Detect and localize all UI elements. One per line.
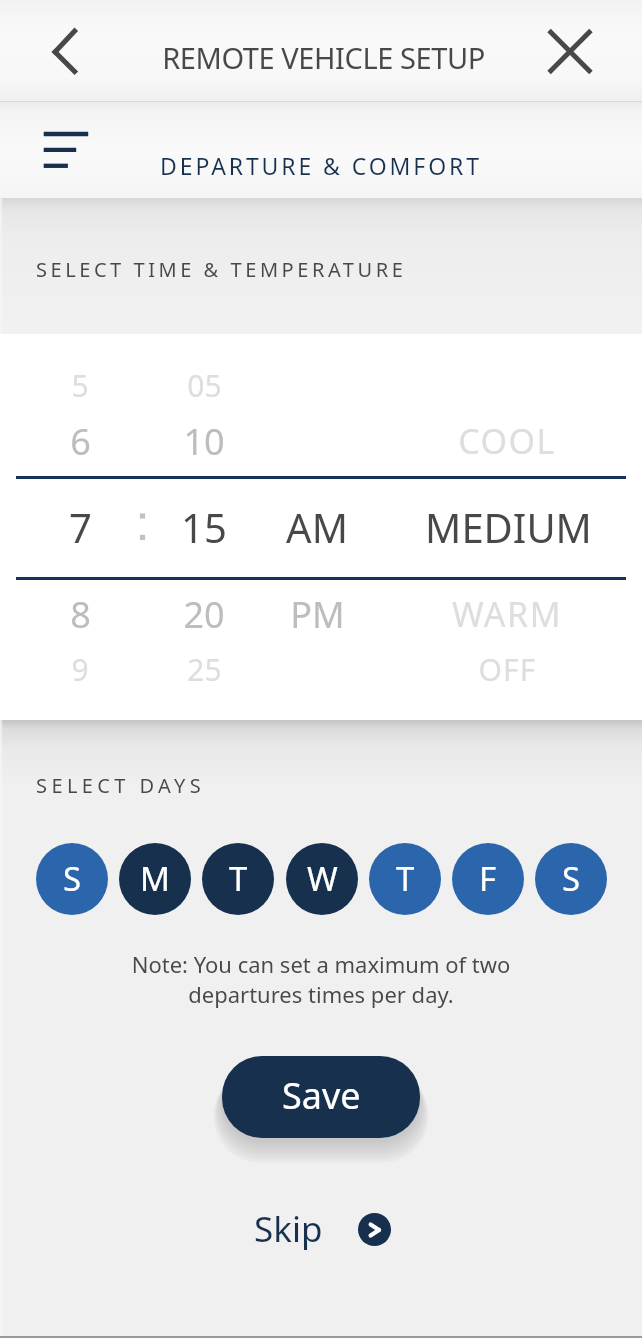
staticText: SELECT TIME & TEMPERATURE — [36, 256, 407, 283]
button[interactable]: T — [369, 843, 441, 915]
staticText: 25 — [187, 649, 222, 690]
staticText: Skip — [254, 1205, 323, 1253]
button[interactable]: F — [452, 843, 524, 915]
staticText: AM — [286, 500, 348, 554]
staticText: T — [396, 856, 415, 901]
staticText: 8 — [70, 590, 91, 639]
staticText: REMOTE VEHICLE SETUP — [162, 38, 485, 77]
staticText: SELECT DAYS — [36, 772, 206, 799]
staticText: 9 — [71, 649, 89, 690]
staticText: 6 — [70, 417, 91, 466]
staticText: COOL — [458, 418, 556, 464]
button[interactable]: W — [286, 843, 358, 915]
staticText: 20 — [183, 590, 225, 639]
staticText: 7 — [69, 500, 92, 554]
staticText: 10 — [183, 417, 225, 466]
staticText: 05 — [187, 365, 222, 406]
button[interactable]: Skip — [238, 1196, 410, 1262]
staticText: T — [229, 856, 248, 901]
button[interactable]: M — [119, 843, 191, 915]
staticText: WARM — [452, 591, 562, 637]
button[interactable]: Menu — [34, 122, 98, 178]
button[interactable]: Close — [539, 20, 601, 82]
staticText: F — [479, 856, 497, 901]
staticText: Save — [282, 1071, 361, 1120]
button[interactable]: Back — [30, 12, 100, 92]
staticText: S — [562, 856, 581, 901]
staticText: 15 — [181, 500, 227, 554]
staticText: S — [63, 856, 82, 901]
staticText: DEPARTURE & COMFORT — [160, 150, 482, 181]
staticText: M — [140, 856, 170, 901]
staticText: OFF — [478, 649, 537, 690]
staticText: W — [307, 856, 338, 901]
staticText: MEDIUM — [425, 500, 592, 554]
staticText: 5 — [71, 365, 89, 406]
button[interactable]: S — [36, 843, 108, 915]
staticText: Note: You can set a maximum of two depar… — [0, 949, 642, 1010]
button[interactable]: Save — [222, 1056, 420, 1138]
staticText: PM — [290, 590, 345, 639]
button[interactable]: T — [202, 843, 274, 915]
button[interactable]: S — [535, 843, 607, 915]
